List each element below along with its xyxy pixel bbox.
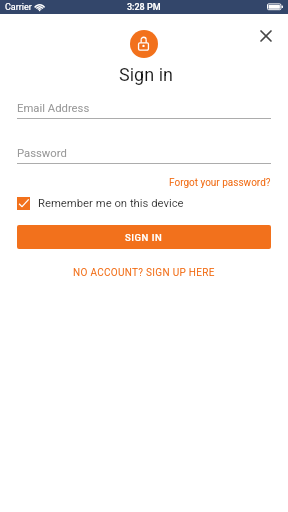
staticText: Remember me on this device bbox=[38, 197, 184, 210]
button[interactable]: Forgot your password? bbox=[169, 173, 271, 193]
staticText: Sign in bbox=[2, 64, 288, 85]
other: Secure sign in bbox=[130, 30, 158, 58]
button[interactable]: Remember me on this device bbox=[17, 197, 184, 210]
staticText: Email Address bbox=[17, 102, 90, 115]
staticText: Carrier bbox=[5, 2, 32, 13]
button[interactable]: NO ACCOUNT? SIGN UP HERE bbox=[73, 267, 215, 279]
staticText: 3:28 PM bbox=[127, 2, 161, 13]
staticText: SIGN IN bbox=[125, 232, 163, 243]
staticText: Forgot your password? bbox=[169, 177, 271, 189]
button[interactable]: SIGN IN bbox=[17, 225, 271, 249]
button[interactable]: Close bbox=[253, 23, 279, 49]
staticText: Password bbox=[17, 147, 67, 160]
